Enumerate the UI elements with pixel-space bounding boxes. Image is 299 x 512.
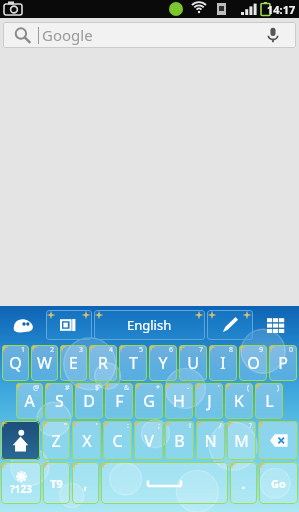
button[interactable]: Q bbox=[2, 345, 29, 381]
button[interactable]: E bbox=[60, 345, 87, 381]
button[interactable]: B bbox=[165, 421, 194, 460]
staticText: C bbox=[112, 430, 123, 452]
staticText: T bbox=[129, 352, 138, 374]
button[interactable]: L bbox=[255, 383, 283, 419]
staticText: ' bbox=[218, 383, 220, 393]
staticText: ' bbox=[96, 421, 98, 431]
button[interactable]: X bbox=[72, 421, 101, 460]
button[interactable]: Y bbox=[149, 345, 177, 381]
staticText: 9 bbox=[259, 345, 264, 355]
button[interactable]: Edit bbox=[207, 310, 253, 340]
button[interactable]: R bbox=[89, 345, 117, 381]
button[interactable]: P bbox=[269, 345, 297, 381]
button[interactable]: Theme bbox=[3, 306, 45, 344]
staticText: ! bbox=[189, 421, 191, 431]
staticText: Z bbox=[51, 430, 61, 452]
button[interactable]: S bbox=[45, 383, 73, 419]
staticText: . bbox=[241, 472, 246, 494]
staticText: S bbox=[55, 390, 64, 412]
button[interactable]: H bbox=[165, 383, 193, 419]
staticText: I bbox=[220, 352, 226, 374]
staticText: 5 bbox=[139, 345, 144, 355]
staticText: 7 bbox=[199, 345, 204, 355]
button[interactable]: C bbox=[103, 421, 132, 460]
staticText: R bbox=[98, 352, 108, 374]
staticText: E bbox=[69, 352, 78, 374]
button[interactable]: D bbox=[75, 383, 103, 419]
staticText: ; bbox=[158, 421, 160, 431]
button[interactable]: Go bbox=[259, 462, 298, 504]
staticText: $ bbox=[95, 383, 100, 393]
staticText: Google bbox=[42, 25, 93, 45]
staticText: N bbox=[204, 430, 217, 452]
staticText: & bbox=[124, 383, 130, 393]
staticText: ? bbox=[249, 421, 253, 431]
staticText: 8 bbox=[229, 345, 234, 355]
button[interactable]: G bbox=[135, 383, 163, 419]
staticText: @ bbox=[33, 383, 40, 393]
staticText: 4 bbox=[109, 345, 114, 355]
button[interactable]: V bbox=[134, 421, 163, 460]
staticText: ?123 bbox=[10, 482, 32, 496]
staticText: W bbox=[37, 352, 52, 374]
button[interactable]: Space bbox=[101, 462, 228, 504]
button[interactable]: Shift bbox=[1, 421, 40, 460]
button[interactable]: Google bbox=[3, 22, 296, 48]
staticText: 2 bbox=[50, 345, 55, 355]
staticText: * bbox=[156, 383, 160, 393]
staticText: U bbox=[187, 352, 199, 374]
button[interactable]: , bbox=[72, 462, 99, 504]
staticText: M bbox=[234, 430, 249, 452]
button[interactable]: Layout bbox=[46, 310, 92, 340]
button[interactable]: W bbox=[31, 345, 58, 381]
staticText: P bbox=[278, 352, 288, 374]
button[interactable]: Backspace bbox=[258, 421, 298, 460]
staticText: 6 bbox=[169, 345, 174, 355]
button[interactable]: J bbox=[195, 383, 223, 419]
button[interactable]: A bbox=[16, 383, 43, 419]
staticText: Go bbox=[271, 476, 286, 491]
staticText: G bbox=[143, 390, 155, 412]
button[interactable]: T9 bbox=[43, 462, 70, 504]
button[interactable]: Keypad bbox=[254, 306, 296, 344]
staticText: H bbox=[173, 390, 185, 412]
button[interactable]: T bbox=[119, 345, 147, 381]
button[interactable]: Z bbox=[42, 421, 70, 460]
button[interactable]: English bbox=[94, 310, 205, 340]
staticText: X bbox=[82, 430, 92, 452]
button[interactable]: F bbox=[105, 383, 133, 419]
staticText: F bbox=[115, 390, 124, 412]
staticText: : bbox=[127, 421, 129, 431]
staticText: J bbox=[207, 390, 212, 412]
staticText: O bbox=[247, 352, 260, 374]
staticText: 1 bbox=[21, 345, 26, 355]
staticText: D bbox=[83, 390, 95, 412]
staticText: A bbox=[24, 390, 35, 412]
staticText: English bbox=[127, 316, 172, 334]
staticText: 14:17 bbox=[267, 2, 296, 17]
button[interactable]: ?123 bbox=[1, 462, 41, 504]
button[interactable]: O bbox=[239, 345, 267, 381]
staticText: " bbox=[64, 421, 67, 431]
button[interactable]: M bbox=[227, 421, 256, 460]
staticText: Q bbox=[9, 352, 22, 374]
staticText: V bbox=[144, 430, 154, 452]
staticText: 3 bbox=[79, 345, 84, 355]
staticText: K bbox=[234, 390, 244, 412]
staticText: ( bbox=[247, 383, 250, 393]
staticText: # bbox=[65, 383, 70, 393]
button[interactable]: U bbox=[179, 345, 207, 381]
staticText: / bbox=[219, 421, 222, 431]
staticText: B bbox=[174, 430, 185, 452]
button[interactable]: K bbox=[225, 383, 253, 419]
button[interactable]: Voice search bbox=[260, 22, 286, 48]
staticText: Y bbox=[158, 352, 168, 374]
staticText: T9 bbox=[50, 476, 63, 491]
button[interactable]: . bbox=[230, 462, 257, 504]
staticText: ) bbox=[277, 383, 280, 393]
staticText: 0 bbox=[289, 345, 294, 355]
staticText: - bbox=[187, 383, 190, 393]
button[interactable]: I bbox=[209, 345, 237, 381]
staticText: L bbox=[265, 390, 274, 412]
button[interactable]: N bbox=[196, 421, 225, 460]
